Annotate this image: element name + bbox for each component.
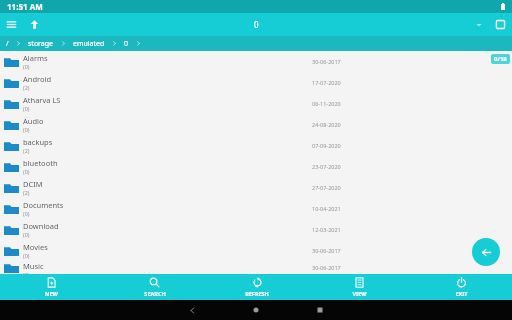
staticText: 0 [254, 19, 259, 30]
button[interactable]: EXIT [410, 274, 512, 300]
staticText: / [6, 39, 9, 49]
button[interactable]: 0 [118, 39, 135, 49]
button[interactable]: / [0, 39, 15, 49]
staticText: REFRESH [245, 290, 269, 297]
staticText: Download [23, 221, 59, 231]
button[interactable]: bluetooth [0, 156, 512, 177]
staticText: Music [23, 261, 44, 271]
button[interactable]: Music [0, 261, 512, 274]
staticText: 30-06-2017 [312, 58, 341, 65]
staticText: 12-03-2021 [312, 226, 341, 233]
staticText: (0) [23, 252, 30, 259]
staticText: EXIT [455, 290, 468, 297]
staticText: 30-06-2017 [312, 247, 341, 254]
staticText: (2) [23, 147, 30, 154]
staticText: 10-04-2021 [312, 205, 341, 212]
staticText: storage [28, 39, 54, 49]
button[interactable]: NEW [0, 274, 103, 300]
staticText: (0) [23, 105, 30, 112]
staticText: 17-07-2020 [312, 79, 341, 86]
staticText: backups [23, 137, 53, 147]
button[interactable]: Documents [0, 198, 512, 219]
button[interactable]: VIEW [308, 274, 410, 300]
button[interactable]: Recents [303, 300, 337, 320]
staticText: 23-07-2020 [312, 163, 341, 170]
staticText: (2) [23, 84, 30, 91]
staticText: (2) [23, 189, 30, 196]
button[interactable]: storage [22, 39, 60, 49]
staticText: (0) [23, 63, 30, 70]
button[interactable]: 0/18 [491, 54, 510, 64]
staticText: NEW [45, 290, 58, 297]
staticText: (0) [23, 210, 30, 217]
button[interactable]: REFRESH [206, 274, 308, 300]
staticText: (0) [23, 271, 30, 274]
button[interactable]: emulated [67, 39, 111, 49]
button[interactable]: Audio [0, 114, 512, 135]
staticText: Movies [23, 242, 48, 252]
staticText: emulated [73, 39, 105, 49]
staticText: (0) [23, 126, 30, 133]
button[interactable]: Android [0, 72, 512, 93]
staticText: (0) [23, 231, 30, 238]
staticText: Audio [23, 116, 44, 126]
staticText: 07-09-2020 [312, 142, 341, 149]
button[interactable]: Movies [0, 240, 512, 261]
staticText: 0/18 [494, 55, 507, 63]
button[interactable]: Alarms [0, 51, 512, 72]
button[interactable]: backups [0, 135, 512, 156]
staticText: Atharva LS [23, 95, 61, 105]
staticText: SEARCH [144, 290, 166, 297]
staticText: 24-08-2020 [312, 121, 341, 128]
staticText: Documents [23, 200, 64, 210]
staticText: 27-07-2020 [312, 184, 341, 191]
button[interactable]: Download [0, 219, 512, 240]
staticText: Android [23, 74, 52, 84]
button[interactable]: SEARCH [103, 274, 206, 300]
staticText: 06-11-2020 [312, 100, 341, 107]
button[interactable]: Sort [469, 15, 489, 35]
staticText: 11:51 AM [7, 1, 43, 12]
button[interactable]: DCIM [0, 177, 512, 198]
staticText: 30-06-2017 [312, 264, 341, 271]
button[interactable]: Back [175, 300, 209, 320]
button[interactable]: Back [472, 238, 500, 266]
staticText: bluetooth [23, 158, 58, 168]
button[interactable]: Select all [489, 13, 512, 36]
staticText: (0) [23, 168, 30, 175]
staticText: DCIM [23, 179, 43, 189]
staticText: Alarms [23, 53, 48, 63]
button[interactable]: Atharva LS [0, 93, 512, 114]
button[interactable]: Menu [0, 13, 23, 36]
staticText: 0 [124, 39, 129, 49]
staticText: VIEW [352, 290, 367, 297]
button[interactable]: Up [23, 13, 46, 36]
button[interactable]: Home [239, 300, 273, 320]
